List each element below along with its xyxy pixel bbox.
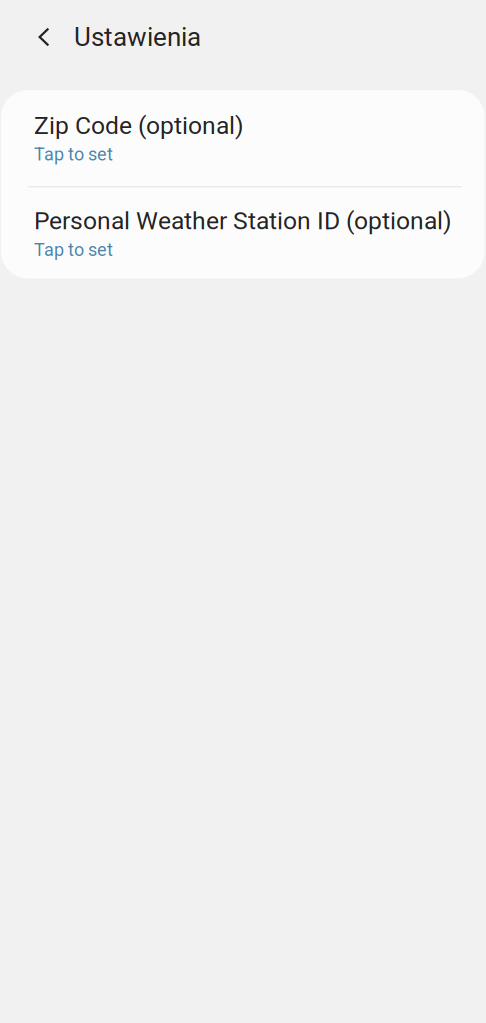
staticText: Tap to set — [34, 144, 113, 165]
staticText: Ustawienia — [74, 22, 201, 52]
staticText: Zip Code (optional) — [34, 111, 244, 140]
button[interactable]: Zip Code (optional) — [1, 90, 484, 186]
staticText: Personal Weather Station ID (optional) — [34, 206, 452, 235]
staticText: Tap to set — [34, 239, 113, 260]
button[interactable]: Personal Weather Station ID (optional) — [1, 187, 484, 278]
button[interactable]: Back — [22, 15, 66, 59]
